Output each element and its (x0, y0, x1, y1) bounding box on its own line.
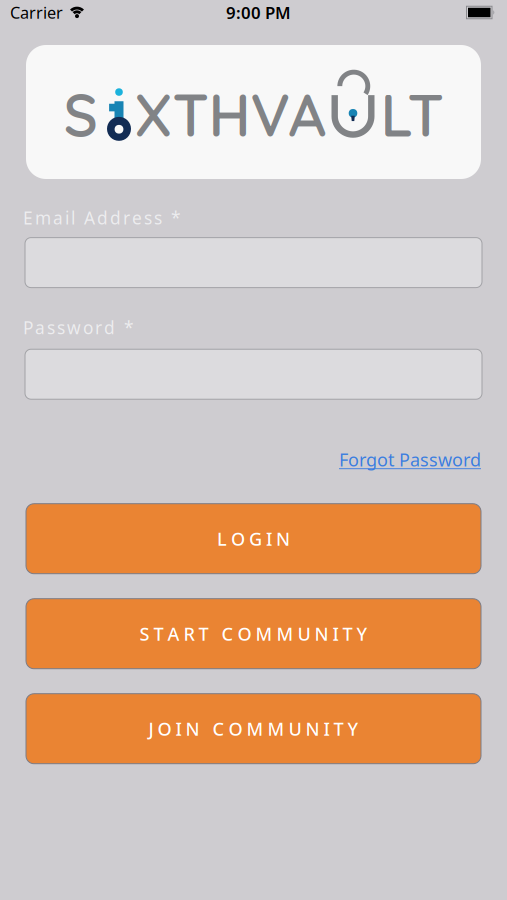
button[interactable]: Forgot Password (339, 447, 481, 472)
staticText: E m a i l A d d r e s s * (23, 206, 181, 230)
button[interactable]: L O G I N (26, 504, 481, 574)
staticText: P a s s w o r d * (23, 316, 134, 339)
staticText: LT (380, 78, 443, 151)
staticText: S T A R T C O M M U N I T Y (139, 621, 367, 646)
staticText: Carrier (10, 1, 63, 24)
staticText: 9:00 PM (226, 1, 291, 24)
button[interactable]: J O I N C O M M U N I T Y (26, 694, 481, 764)
staticText: J O I N C O M M U N I T Y (148, 716, 358, 741)
staticText: Forgot Password (339, 447, 481, 472)
staticText: L O G I N (217, 526, 290, 551)
button[interactable]: S T A R T C O M M U N I T Y (26, 599, 481, 669)
staticText: S (63, 78, 97, 151)
staticText: XTHVA (134, 78, 326, 151)
button[interactable]: Email Address (25, 238, 482, 288)
button[interactable]: Password (25, 349, 482, 399)
